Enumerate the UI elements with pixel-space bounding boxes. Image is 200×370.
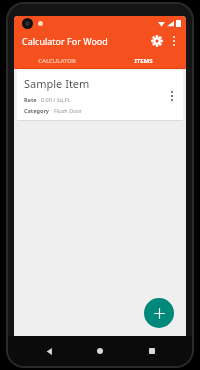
staticText: Category xyxy=(24,107,50,114)
button[interactable]: CALCULATOR xyxy=(14,52,100,69)
button[interactable]: Home xyxy=(89,340,111,362)
button[interactable]: Recent apps xyxy=(141,340,163,362)
button[interactable]: Settings xyxy=(148,32,166,50)
button[interactable]: Back xyxy=(38,340,60,362)
button[interactable]: Sample Item xyxy=(17,70,183,121)
staticText: Flush Door xyxy=(54,107,83,114)
staticText: Rate xyxy=(24,96,37,103)
staticText: Calculator For Wood xyxy=(22,35,108,47)
button[interactable]: Add item xyxy=(144,298,174,328)
staticText: ITEMS xyxy=(134,57,153,65)
staticText: 0.00 / Sq.Ft. xyxy=(41,96,72,103)
staticText: CALCULATOR xyxy=(38,57,76,65)
button[interactable]: More options xyxy=(166,33,182,49)
staticText: Sample Item xyxy=(24,76,90,91)
button[interactable]: ITEMS xyxy=(100,52,186,69)
button[interactable]: Item options xyxy=(164,88,180,104)
